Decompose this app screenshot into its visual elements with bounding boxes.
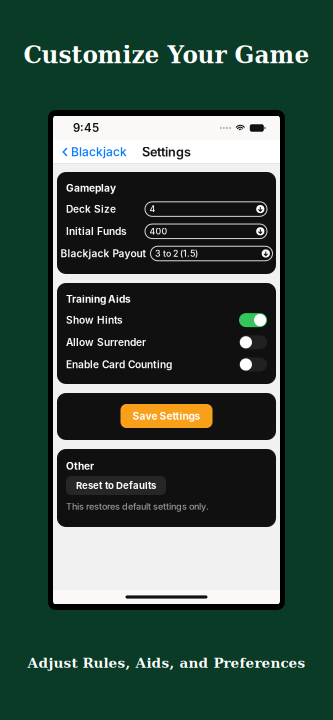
staticText: Customize Your Game: [23, 41, 309, 69]
staticText: Adjust Rules, Aids, and Preferences: [27, 655, 305, 671]
button[interactable]: Blackjack Payout: [66, 242, 267, 265]
staticText: Training Aids: [66, 293, 131, 305]
staticText: Gameplay: [66, 182, 116, 194]
staticText: Settings: [142, 144, 191, 160]
staticText: Blackjack: [71, 145, 127, 159]
button[interactable]: Initial Funds: [66, 220, 267, 242]
staticText: Allow Surrender: [66, 336, 146, 348]
staticText: Reset to Defaults: [76, 480, 156, 491]
staticText: Blackjack Payout: [60, 247, 146, 260]
staticText: Other: [66, 460, 94, 472]
button[interactable]: Deck Size: [66, 198, 267, 220]
staticText: 400: [149, 226, 167, 237]
staticText: Show Hints: [66, 314, 123, 326]
button[interactable]: Show Hints: [66, 309, 267, 331]
staticText: Enable Card Counting: [66, 358, 172, 371]
staticText: This restores default settings only.: [66, 501, 209, 512]
staticText: 4: [149, 204, 155, 214]
button[interactable]: Reset to Defaults: [66, 476, 166, 495]
staticText: 3 to 2 (1.5): [155, 248, 198, 259]
button[interactable]: Blackjack: [62, 142, 127, 162]
staticText: Initial Funds: [66, 225, 127, 237]
button[interactable]: Save Settings: [120, 404, 212, 428]
staticText: 9:45: [73, 121, 99, 135]
button[interactable]: Enable Card Counting: [66, 353, 267, 376]
staticText: Deck Size: [66, 203, 116, 215]
button[interactable]: Allow Surrender: [66, 331, 267, 353]
staticText: Save Settings: [132, 410, 200, 422]
